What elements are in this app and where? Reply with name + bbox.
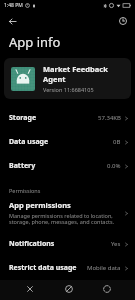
staticText: App permissions [9, 200, 71, 210]
button[interactable]: Storage [0, 106, 135, 130]
staticText: Mobile data [87, 264, 121, 272]
button[interactable]: Battery [0, 154, 135, 178]
button[interactable]: Restrict data usage [0, 256, 135, 280]
staticText: Restrict data usage [9, 263, 77, 273]
staticText: Market Feedback Agent [43, 64, 124, 84]
button[interactable]: Data usage [0, 130, 135, 154]
staticText: 1:48 PM [4, 2, 23, 9]
staticText: Data usage [9, 137, 49, 147]
staticText: Permissions [9, 187, 41, 194]
button[interactable]: App permissions [0, 196, 135, 232]
staticText: 0.0% [107, 162, 121, 170]
staticText: Notifications [9, 239, 55, 249]
staticText: 57.34KB [98, 114, 121, 122]
button[interactable]: Notifications [0, 232, 135, 256]
staticText: Storage [9, 113, 37, 123]
button[interactable]: Market Feedback Agent [4, 58, 131, 99]
button[interactable]: Force stop [15, 284, 45, 296]
staticText: Version 11:6684105 [43, 86, 94, 93]
button[interactable]: Help [115, 13, 131, 29]
button[interactable]: Disable [57, 284, 80, 296]
staticText: Manage permissions related to location, … [9, 212, 120, 226]
button[interactable]: Back [4, 13, 20, 29]
button[interactable]: Clear data [92, 284, 121, 296]
staticText: Battery [9, 161, 36, 171]
staticText: 0B [113, 138, 121, 146]
staticText: Yes [111, 240, 121, 248]
staticText: App info [9, 33, 61, 51]
